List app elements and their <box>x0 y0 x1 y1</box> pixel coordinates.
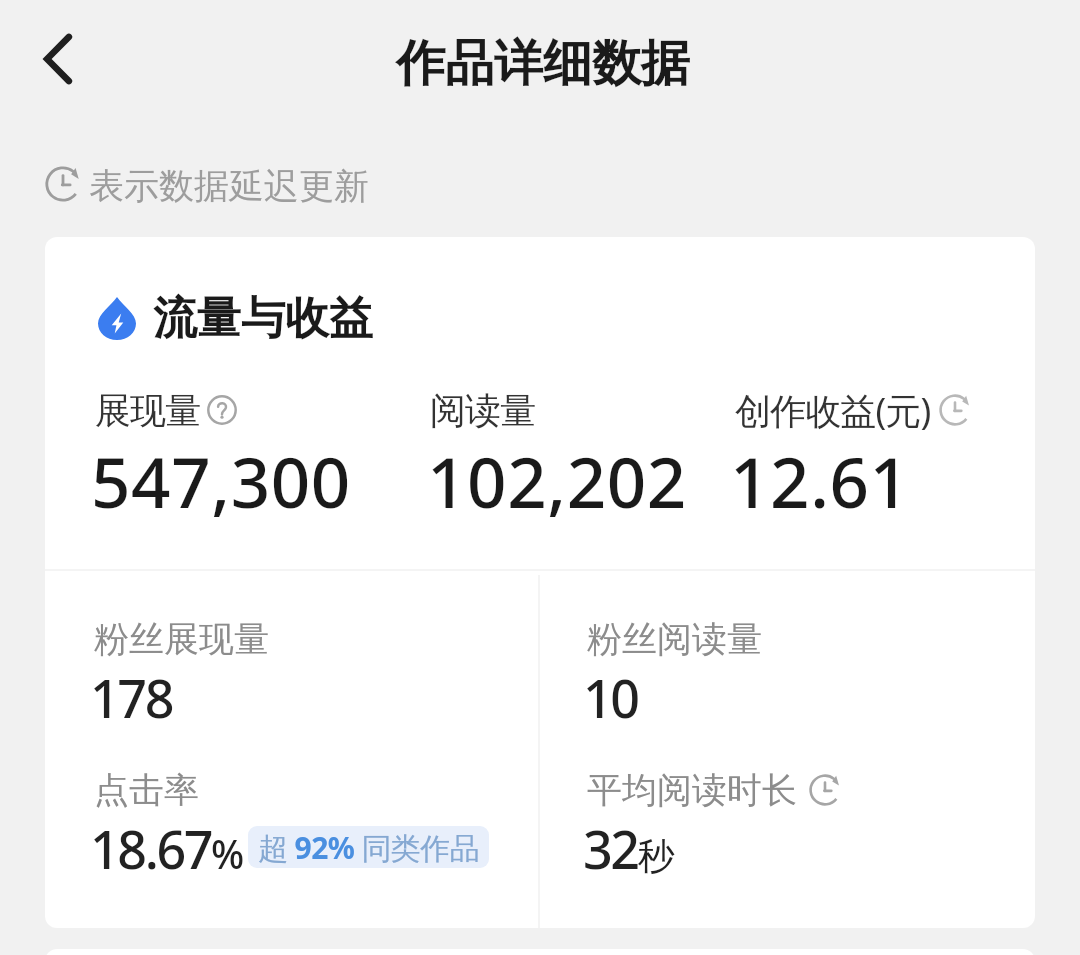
staticText: 粉丝展现量 <box>94 617 269 661</box>
button[interactable]: 创作收益(元) 12.61 <box>735 386 971 528</box>
staticText: 18.67% <box>90 813 242 884</box>
button[interactable]: Back <box>20 21 96 97</box>
staticText: 超 92% 同类作品 <box>258 827 479 868</box>
button[interactable]: 点击率 18.67% <box>94 768 492 884</box>
staticText: 178 <box>90 662 173 733</box>
staticText: 547,300 <box>91 434 351 528</box>
button[interactable]: 粉丝阅读量 10 <box>587 617 762 733</box>
staticText: 102,202 <box>427 434 687 528</box>
button[interactable]: 阅读量 102,202 <box>430 386 690 528</box>
staticText: 作品详细数据 <box>396 33 690 95</box>
button[interactable]: 展现量 547,300 <box>95 386 355 528</box>
staticText: 展现量 <box>95 388 201 433</box>
button[interactable]: 流量与收益 <box>98 290 373 340</box>
button[interactable]: 粉丝展现量 178 <box>94 617 269 733</box>
staticText: 粉丝阅读量 <box>587 617 762 661</box>
staticText: 点击率 <box>94 768 199 812</box>
button[interactable]: 平均阅读时长 32秒 <box>587 768 841 884</box>
staticText: 创作收益(元) <box>735 386 931 434</box>
staticText: 平均阅读时长 <box>587 768 797 812</box>
staticText: 阅读量 <box>430 388 536 433</box>
staticText: 表示数据延迟更新 <box>89 164 369 208</box>
staticText: 10 <box>583 662 638 733</box>
staticText: 12.61 <box>730 434 910 528</box>
staticText: 32秒 <box>583 813 673 884</box>
staticText: 流量与收益 <box>153 291 373 341</box>
